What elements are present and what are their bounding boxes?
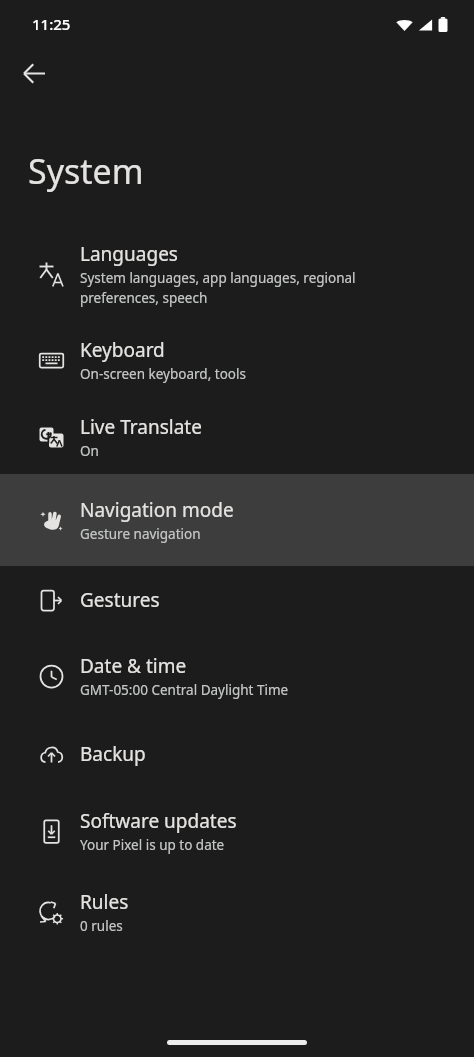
- staticText: On-screen keyboard, tools: [80, 365, 246, 383]
- staticText: Gesture navigation: [80, 525, 201, 543]
- button[interactable]: Gestures: [0, 566, 474, 634]
- staticText: Backup: [80, 741, 146, 767]
- staticText: Rules: [80, 889, 129, 915]
- button[interactable]: Languages: [0, 228, 474, 320]
- button[interactable]: Keyboard: [0, 320, 474, 400]
- staticText: Your Pixel is up to date: [80, 836, 225, 854]
- button[interactable]: Rules: [0, 872, 474, 952]
- staticText: Gestures: [80, 587, 160, 613]
- staticText: 0 rules: [80, 917, 123, 935]
- staticText: GMT-05:00 Central Daylight Time: [80, 681, 289, 699]
- button[interactable]: Software updates: [0, 790, 474, 872]
- staticText: Date & time: [80, 653, 187, 679]
- staticText: Live Translate: [80, 414, 202, 440]
- button[interactable]: Live Translate: [0, 400, 474, 474]
- button[interactable]: Navigation mode: [0, 474, 474, 566]
- staticText: Navigation mode: [80, 497, 234, 523]
- staticText: 11:25: [32, 14, 71, 34]
- staticText: System: [28, 148, 144, 194]
- staticText: On: [80, 442, 99, 460]
- staticText: Languages: [80, 241, 178, 267]
- staticText: Software updates: [80, 808, 237, 834]
- staticText: System languages, app languages, regiona…: [80, 269, 356, 307]
- button[interactable]: Backup: [0, 718, 474, 790]
- staticText: Keyboard: [80, 337, 165, 363]
- button[interactable]: Back: [10, 49, 58, 97]
- button[interactable]: Date & time: [0, 634, 474, 718]
